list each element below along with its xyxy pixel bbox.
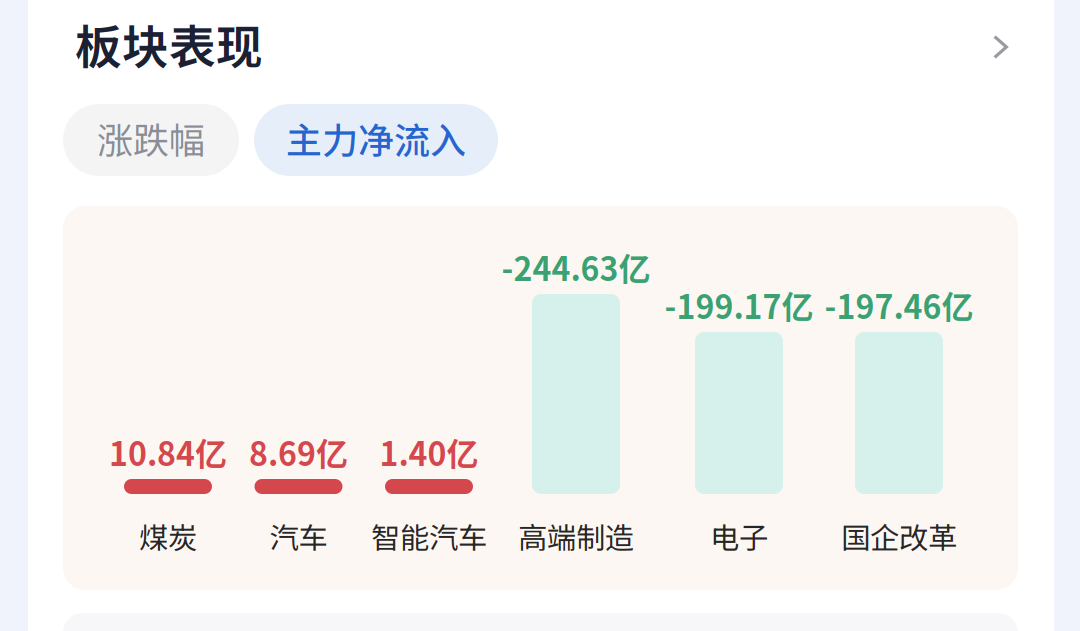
button[interactable]: 1.40亿: [359, 206, 499, 590]
staticText: 涨跌幅: [97, 112, 205, 164]
staticText: 汽车: [269, 515, 327, 557]
staticText: -199.17亿: [664, 282, 813, 328]
staticText: 板块表现: [75, 10, 263, 78]
button[interactable]: 涨跌幅: [63, 104, 239, 176]
button[interactable]: -244.63亿: [501, 206, 651, 590]
staticText: -244.63亿: [501, 244, 650, 290]
button[interactable]: -197.46亿: [824, 206, 974, 590]
button[interactable]: 10.84亿: [103, 206, 233, 590]
button[interactable]: 8.69亿: [233, 206, 363, 590]
staticText: 电子: [710, 515, 768, 557]
button[interactable]: -199.17亿: [661, 206, 816, 590]
staticText: 主力净流入: [286, 112, 466, 164]
staticText: 1.40亿: [379, 429, 478, 475]
staticText: 8.69亿: [249, 429, 348, 475]
staticText: -197.46亿: [824, 282, 973, 328]
staticText: 国企改革: [841, 515, 957, 557]
staticText: 高端制造: [518, 515, 634, 557]
button[interactable]: 主力净流入: [254, 104, 498, 176]
staticText: 智能汽车: [371, 515, 487, 557]
staticText: 10.84亿: [109, 429, 227, 475]
staticText: 煤炭: [139, 515, 197, 557]
button[interactable]: 板块表现: [28, 0, 1054, 92]
